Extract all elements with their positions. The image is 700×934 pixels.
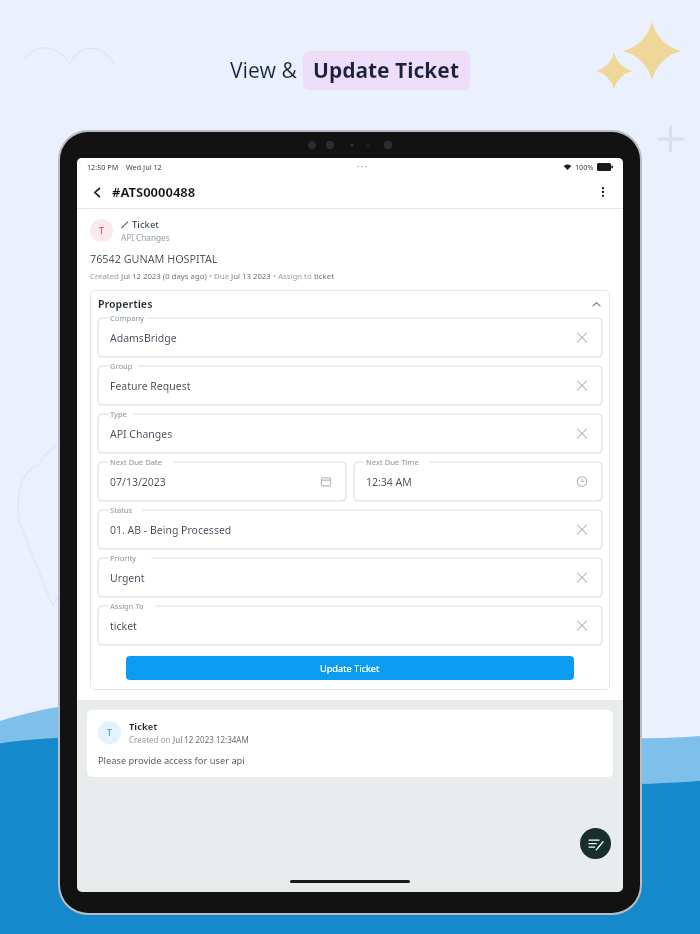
staticText: 100% (575, 162, 594, 172)
button[interactable]: T (87, 710, 613, 777)
staticText: Assign to (278, 271, 314, 282)
staticText: Update Ticket (320, 662, 380, 675)
staticText: Next Due Date (110, 457, 162, 467)
staticText: Type (110, 409, 127, 419)
staticText: ticket (110, 619, 137, 633)
button[interactable]: Priority (98, 552, 602, 597)
staticText: View & (230, 56, 303, 85)
staticText: 12:34 AM (366, 475, 412, 489)
button[interactable]: Company (98, 312, 602, 357)
staticText: Assign To (110, 601, 144, 611)
staticText: 07/13/2023 (110, 475, 166, 489)
staticText: 01. AB - Being Processed (110, 523, 232, 537)
button[interactable]: Status (98, 504, 602, 549)
button[interactable]: Type (98, 408, 602, 453)
staticText: Created on (129, 734, 173, 745)
button[interactable]: Group (98, 360, 602, 405)
staticText: Wed Jul 12 (126, 162, 162, 172)
staticText: #ATS0000488 (112, 183, 196, 201)
button[interactable]: Next Due Date (98, 456, 346, 501)
staticText: Properties (98, 297, 153, 311)
staticText: API Changes (121, 232, 170, 243)
button[interactable]: Add note (580, 828, 611, 859)
staticText: • (271, 271, 278, 282)
staticText: Status (110, 505, 133, 515)
staticText: • • • (357, 163, 367, 171)
staticText: Jul 13 2023 (231, 271, 271, 282)
staticText: Created (90, 271, 121, 282)
staticText: • (207, 271, 214, 282)
staticText: Update Ticket (313, 56, 460, 85)
staticText: T (107, 727, 112, 739)
button[interactable]: Assign To (98, 600, 602, 645)
staticText: T (99, 225, 104, 237)
staticText: ticket (314, 271, 334, 282)
staticText: AdamsBridge (110, 331, 177, 345)
staticText: Jul 12 2023 12:34AM (173, 734, 249, 745)
button[interactable]: Update Ticket (126, 656, 574, 680)
staticText: Jul 12 2023 (0 days ago) (121, 271, 207, 282)
staticText: Ticket (132, 218, 159, 231)
staticText: Due (214, 271, 231, 282)
staticText: Urgent (110, 571, 145, 585)
staticText: Feature Request (110, 379, 191, 393)
staticText: API Changes (110, 427, 173, 441)
button[interactable]: Back (88, 183, 106, 201)
staticText: Priority (110, 553, 136, 563)
staticText: Group (110, 361, 133, 371)
staticText: 76542 GUNAM HOSPITAL (90, 251, 218, 266)
staticText: Company (110, 313, 144, 323)
staticText: Ticket (129, 720, 158, 733)
staticText: Please provide access for user api (98, 754, 245, 767)
button[interactable]: More options (594, 183, 612, 201)
staticText: Next Due Time (366, 457, 419, 467)
button[interactable]: Properties (98, 297, 602, 311)
button[interactable]: Next Due Time (354, 456, 602, 501)
staticText: 12:50 PM (87, 162, 119, 172)
